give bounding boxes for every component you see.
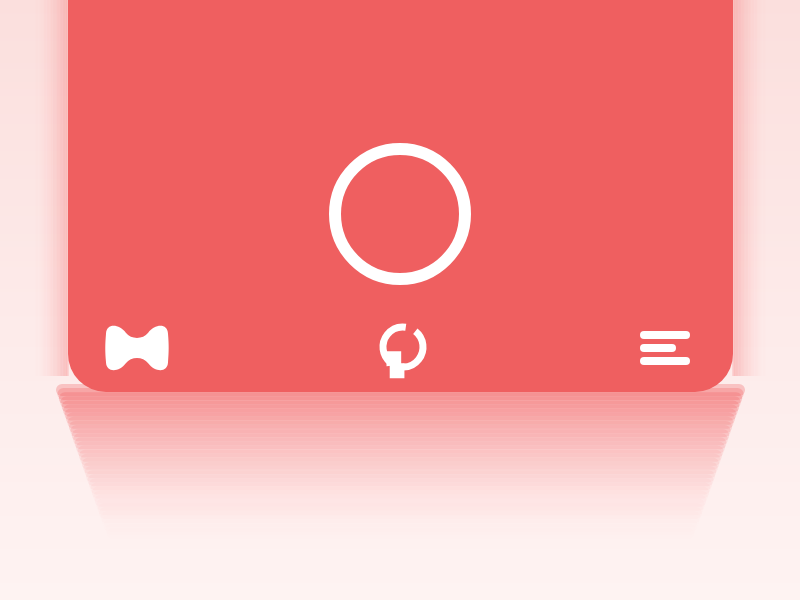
button[interactable]: Menu — [629, 312, 701, 384]
button[interactable]: Refresh — [367, 311, 439, 383]
button[interactable]: Games — [101, 312, 173, 384]
button[interactable]: Record — [325, 139, 475, 289]
